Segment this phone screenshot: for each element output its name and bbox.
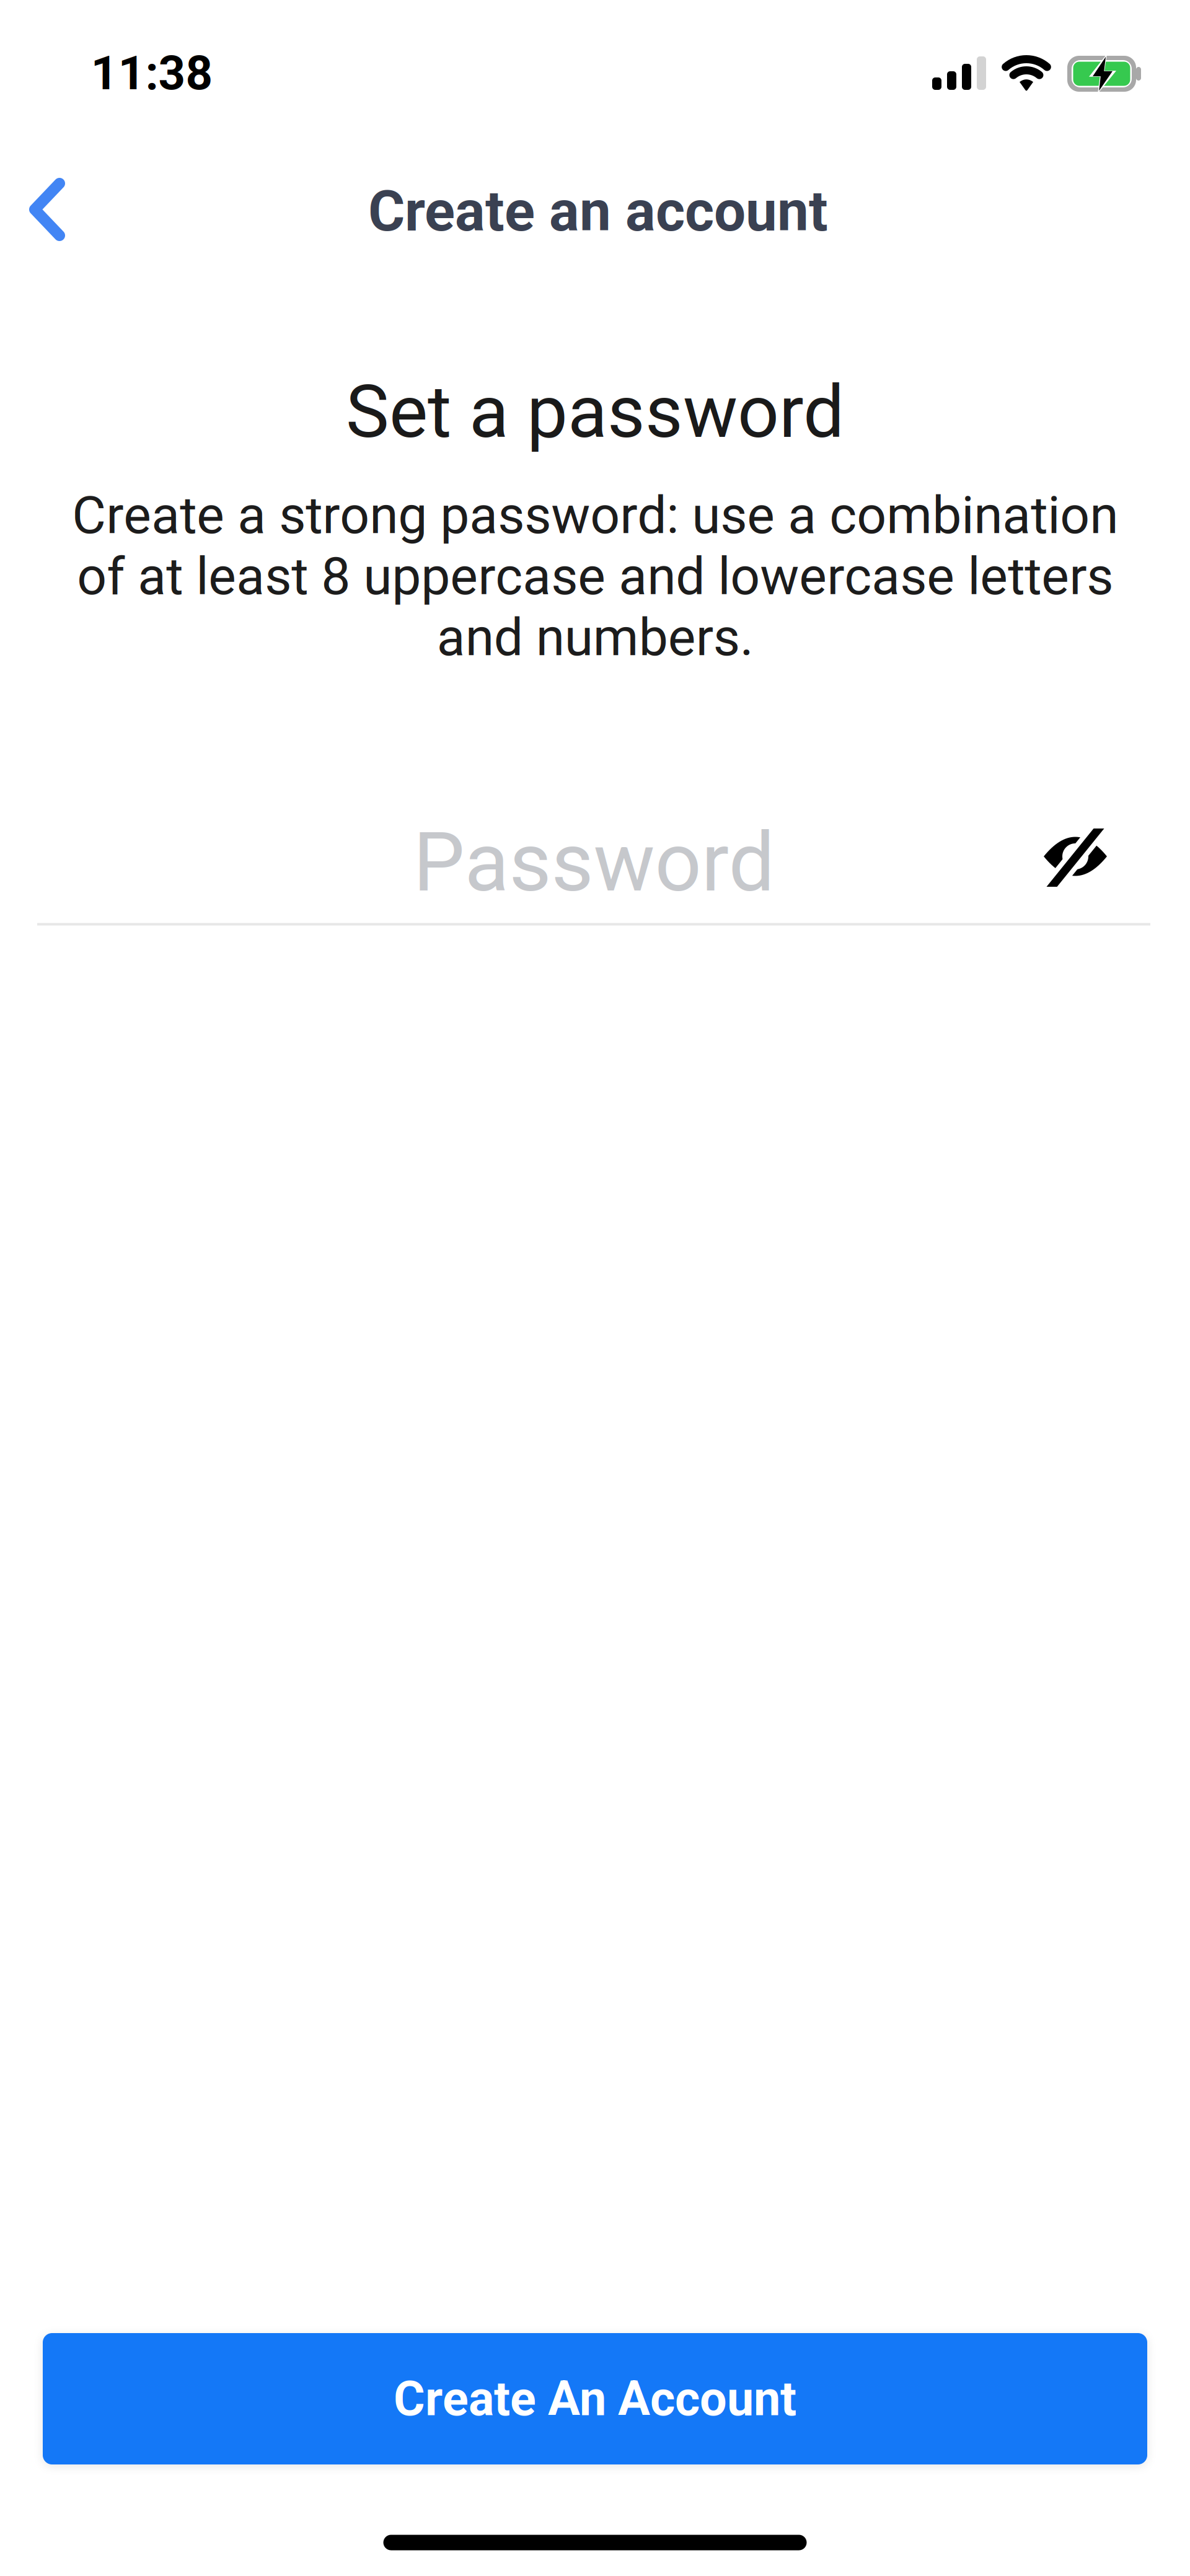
staticText: 11:38 <box>91 46 213 101</box>
staticText: Create an account <box>368 178 828 244</box>
button[interactable]: Back <box>6 155 88 264</box>
button[interactable]: Show password <box>1029 813 1122 900</box>
staticText: Password <box>413 815 774 911</box>
button[interactable]: Create An Account <box>43 2333 1147 2464</box>
staticText: Set a password <box>346 370 844 455</box>
button[interactable]: Password <box>37 802 1150 925</box>
staticText: Create a strong password: use a combinat… <box>72 485 1118 668</box>
staticText: Create An Account <box>394 2371 796 2427</box>
